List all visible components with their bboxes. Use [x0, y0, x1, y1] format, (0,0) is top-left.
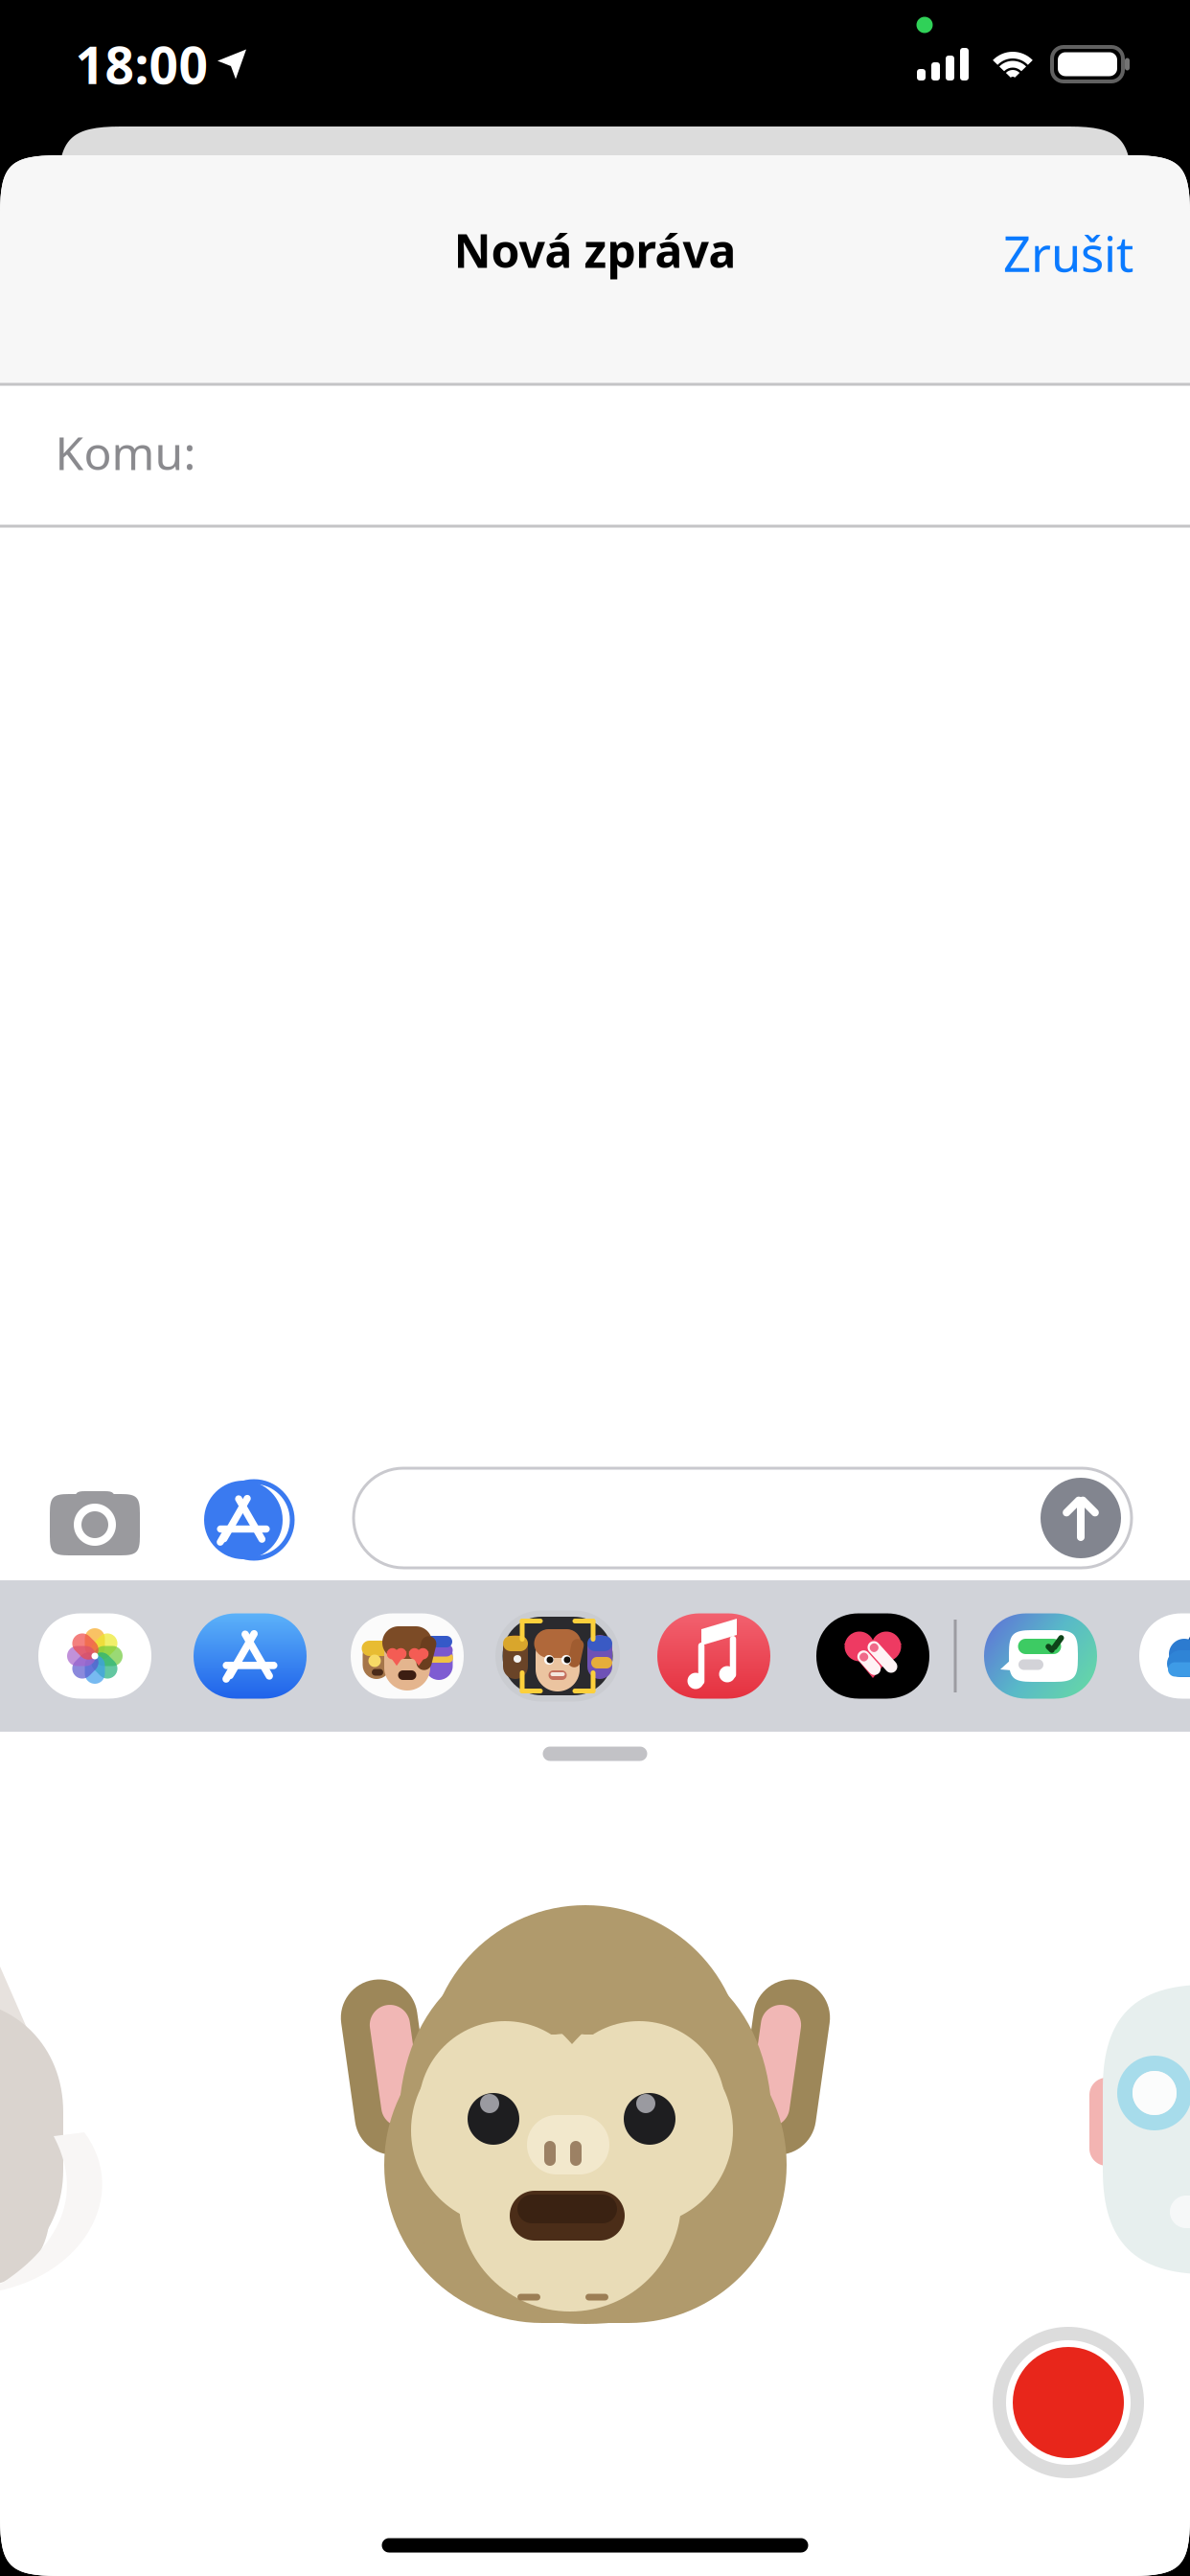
staticText: Komu:	[55, 422, 196, 483]
button[interactable]: Memoji	[495, 1608, 620, 1704]
button[interactable]: Digital Touch	[816, 1613, 929, 1699]
button[interactable]: Record	[992, 2326, 1145, 2479]
button[interactable]: Memoji stickers	[351, 1613, 464, 1699]
button[interactable]: Messages apps	[984, 1613, 1097, 1699]
button[interactable]: Photos	[38, 1613, 151, 1699]
button[interactable]: App Store	[194, 1613, 307, 1699]
button[interactable]: Apps	[196, 1479, 290, 1561]
button[interactable]: Music	[657, 1613, 770, 1699]
button[interactable]: Send	[1041, 1478, 1121, 1558]
button[interactable]: Take photo	[50, 1484, 140, 1555]
button[interactable]: OneDrive	[1139, 1613, 1190, 1699]
staticText: 18:00	[75, 30, 208, 98]
staticText: Nová zpráva	[454, 220, 736, 281]
button[interactable]: Zrušit	[980, 196, 1156, 310]
staticText: Zrušit	[1003, 221, 1133, 285]
